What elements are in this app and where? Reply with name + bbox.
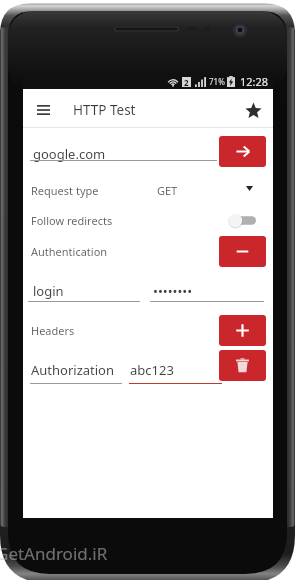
staticText: GetAndroid.iR: [0, 542, 108, 565]
staticText: Follow redirects: [31, 213, 113, 228]
staticText: abc123: [130, 361, 174, 379]
staticText: ••••••••: [153, 282, 193, 300]
button[interactable]: Delete header: [219, 350, 266, 381]
staticText: login: [33, 282, 64, 300]
button[interactable]: Add header: [219, 315, 266, 346]
button[interactable]: Remove authentication: [219, 236, 266, 267]
button[interactable]: Follow redirects: [229, 210, 263, 231]
button[interactable]: Send request: [219, 136, 266, 167]
staticText: GET: [157, 183, 178, 198]
button[interactable]: Open navigation menu: [24, 91, 62, 129]
staticText: Authorization: [31, 361, 115, 379]
staticText: Headers: [31, 323, 75, 338]
staticText: Request type: [31, 183, 99, 198]
button[interactable]: Favourite: [234, 91, 272, 129]
button[interactable]: Choose request type: [238, 177, 260, 199]
staticText: 2: [184, 77, 189, 87]
staticText: HTTP Test: [73, 101, 136, 119]
staticText: google.com: [33, 145, 106, 163]
button: HTTP Test: [67, 91, 130, 129]
staticText: 12:28: [240, 74, 269, 89]
staticText: 71%: [209, 76, 225, 87]
staticText: Authentication: [31, 244, 108, 259]
